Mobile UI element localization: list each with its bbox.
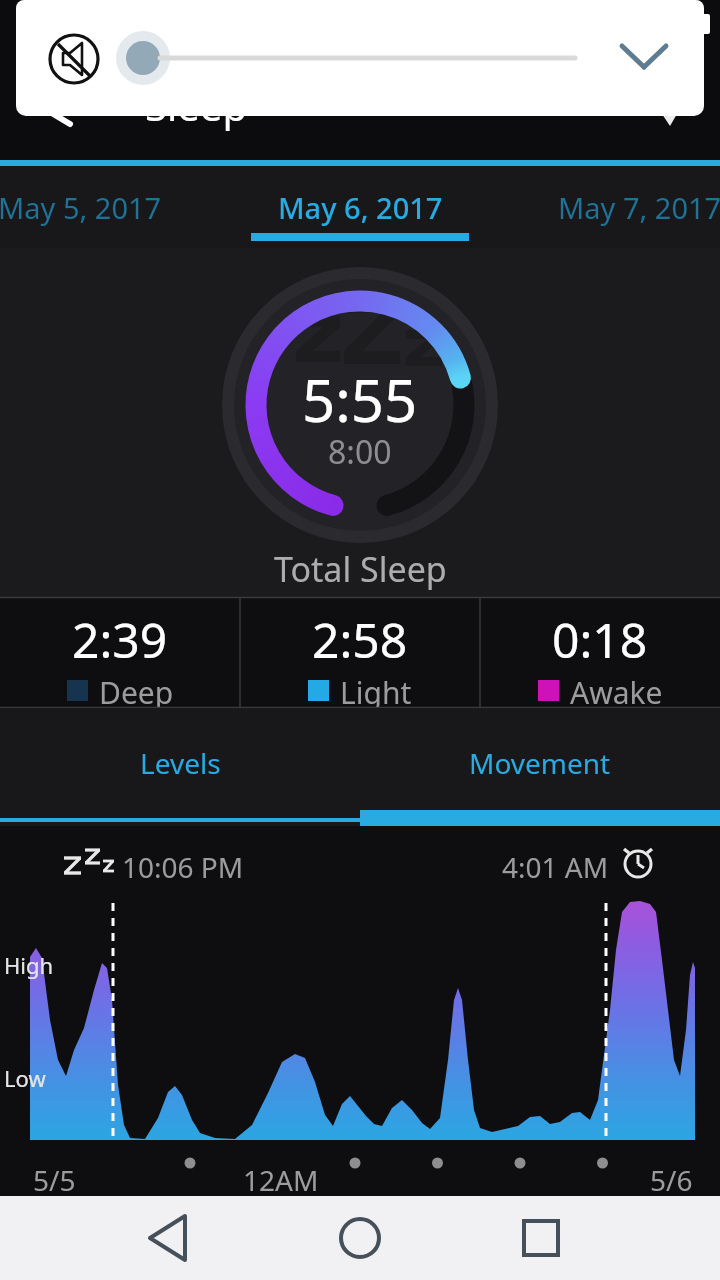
button[interactable] — [16, 0, 704, 116]
button[interactable]: Movement — [360, 708, 720, 826]
staticText: Total Sleep — [274, 546, 447, 592]
button[interactable] — [614, 28, 678, 88]
button[interactable]: 0:18 — [480, 597, 720, 708]
button[interactable]: May 7, 2017 — [558, 188, 720, 227]
staticText: High — [4, 950, 54, 980]
button[interactable]: May 5, 2017 — [0, 188, 162, 227]
staticText: Awake — [570, 672, 663, 708]
button[interactable]: Levels — [0, 708, 360, 826]
staticText: 10:06 PM — [122, 848, 244, 886]
staticText: Light — [340, 672, 412, 708]
staticText: Sleep — [145, 78, 247, 132]
staticText: 5/6 — [650, 1161, 693, 1199]
button[interactable]: May 6, 2017 — [278, 188, 443, 227]
staticText: 2:39 — [72, 607, 168, 672]
button[interactable] — [0, 1196, 240, 1280]
staticText: 8:00 — [328, 430, 392, 474]
staticText: 5/5 — [33, 1161, 76, 1199]
button[interactable] — [0, 0, 160, 160]
button[interactable]: 2:58 — [240, 597, 480, 708]
staticText: Movement — [469, 744, 611, 782]
staticText: Levels — [140, 744, 221, 782]
button[interactable] — [240, 1196, 480, 1280]
staticText: 4:01 AM — [502, 848, 609, 886]
staticText: 2:58 — [312, 607, 408, 672]
button[interactable] — [44, 29, 104, 89]
button[interactable] — [640, 80, 700, 140]
staticText: 5:55 — [302, 360, 418, 439]
staticText: 0:18 — [552, 607, 648, 672]
button[interactable] — [480, 1196, 720, 1280]
button[interactable]: 2:39 — [0, 597, 240, 708]
staticText: Low — [4, 1063, 46, 1093]
staticText: Deep — [99, 672, 174, 708]
staticText: 12AM — [243, 1161, 319, 1199]
